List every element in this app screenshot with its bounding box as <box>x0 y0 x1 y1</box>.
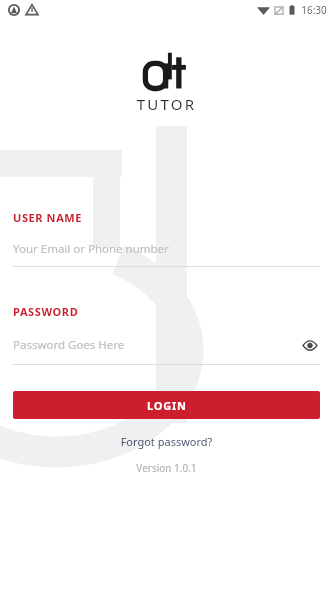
staticText: USER NAME <box>13 210 83 225</box>
button[interactable]: Your Email or Phone number <box>13 241 320 257</box>
button[interactable]: LOGIN <box>13 391 320 419</box>
staticText: Your Email or Phone number <box>13 241 320 257</box>
staticText: Version 1.0.1 <box>0 461 333 475</box>
staticText: TUTOR <box>0 94 333 114</box>
button[interactable]: Show password <box>300 335 320 355</box>
staticText: PASSWORD <box>13 304 79 319</box>
staticText: 16:30 <box>301 3 327 17</box>
staticText: LOGIN <box>147 398 187 413</box>
staticText: Password Goes Here <box>13 337 300 353</box>
button[interactable]: Forgot password? <box>0 432 333 451</box>
button[interactable]: Password Goes Here <box>13 335 320 355</box>
